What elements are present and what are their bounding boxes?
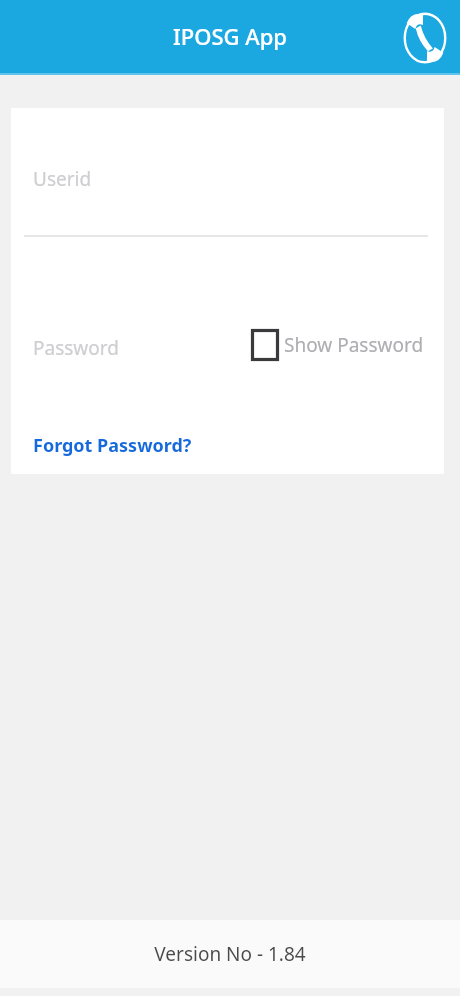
button[interactable]: Userid <box>33 166 333 192</box>
button[interactable]: Call support <box>398 7 452 69</box>
staticText: Forgot Password? <box>33 433 192 458</box>
staticText: Show Password <box>284 332 424 358</box>
staticText: Version No - 1.84 <box>154 941 306 967</box>
button[interactable]: Forgot Password? <box>33 433 192 458</box>
button[interactable]: Password <box>33 335 119 361</box>
button[interactable]: Show Password <box>252 330 424 360</box>
staticText: IPOSG App <box>173 21 287 51</box>
